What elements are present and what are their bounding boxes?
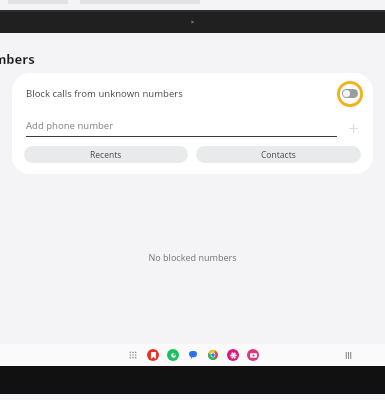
button[interactable]: Add number	[345, 120, 361, 136]
button[interactable]: App	[147, 349, 159, 361]
staticText: Blocked numbers	[0, 50, 35, 66]
staticText: Block calls from unknown numbers	[26, 87, 183, 100]
button[interactable]: Block calls from unknown numbers	[12, 73, 373, 113]
staticText: Recents	[90, 149, 122, 161]
button[interactable]: Recents	[341, 348, 355, 362]
button[interactable]: Contacts	[196, 146, 361, 163]
button[interactable]: Messages	[187, 349, 199, 361]
staticText: Add phone number	[26, 119, 114, 132]
button[interactable]: App	[167, 349, 179, 361]
staticText: No blocked numbers	[148, 251, 237, 263]
button[interactable]: App	[227, 349, 239, 361]
button[interactable]: Recents	[24, 146, 188, 163]
button[interactable]: App	[247, 349, 259, 361]
button[interactable]: Apps	[127, 349, 139, 361]
button[interactable]: Block calls from unknown numbers toggle	[336, 80, 363, 107]
staticText: Contacts	[261, 149, 296, 161]
button[interactable]: Chrome	[207, 349, 219, 361]
